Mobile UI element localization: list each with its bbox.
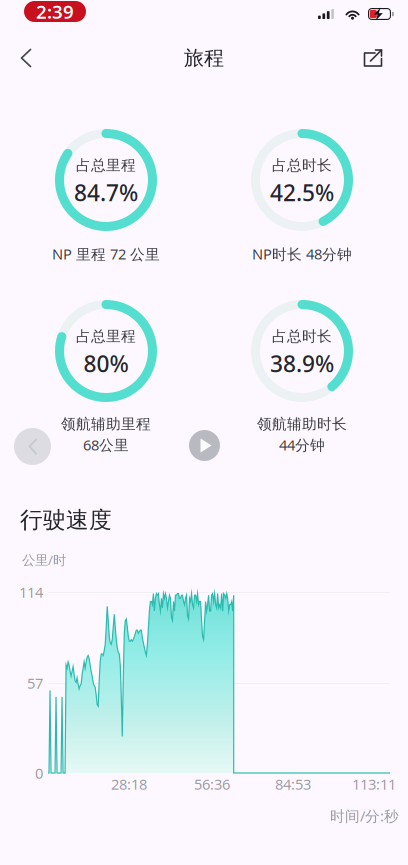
staticText: 84.7% bbox=[74, 177, 138, 208]
button[interactable]: Play bbox=[189, 430, 220, 461]
staticText: 38.9% bbox=[270, 348, 334, 379]
staticText: 占总里程 bbox=[76, 327, 136, 345]
staticText: 42.5% bbox=[270, 177, 334, 208]
staticText: NP时长 48分钟 bbox=[252, 244, 352, 264]
staticText: 公里/时 bbox=[22, 551, 66, 569]
staticText: 113:11 bbox=[352, 774, 396, 794]
staticText: 旅程 bbox=[184, 46, 224, 70]
staticText: 2:39 bbox=[36, 0, 74, 24]
staticText: 114 bbox=[19, 582, 43, 602]
staticText: NP 里程 72 公里 bbox=[52, 244, 160, 264]
staticText: 57 bbox=[27, 673, 43, 693]
staticText: 时间/分:秒 bbox=[330, 806, 399, 825]
staticText: 占总时长 bbox=[272, 156, 332, 174]
staticText: 68公里 bbox=[83, 435, 129, 454]
staticText: 28:18 bbox=[111, 774, 147, 794]
button[interactable]: Back bbox=[4, 36, 48, 80]
staticText: 占总时长 bbox=[272, 327, 332, 345]
staticText: 80% bbox=[83, 348, 128, 379]
staticText: 行驶速度 bbox=[20, 506, 112, 534]
staticText: 0 bbox=[35, 763, 43, 783]
button[interactable]: Share bbox=[351, 36, 395, 80]
staticText: 领航辅助时长 bbox=[257, 415, 347, 433]
staticText: 领航辅助里程 bbox=[61, 415, 151, 433]
staticText: 84:53 bbox=[275, 774, 311, 794]
staticText: 44分钟 bbox=[279, 435, 325, 454]
staticText: 56:36 bbox=[194, 774, 230, 794]
staticText: 占总里程 bbox=[76, 156, 136, 174]
button[interactable]: Previous bbox=[14, 428, 51, 465]
